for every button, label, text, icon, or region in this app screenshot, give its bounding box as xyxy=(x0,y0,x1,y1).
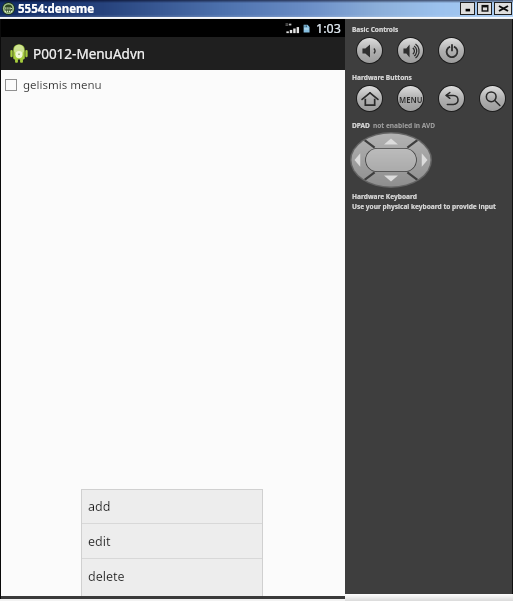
staticText: 1:03 xyxy=(316,20,341,37)
button[interactable]: add xyxy=(81,489,263,523)
staticText: DPAD xyxy=(352,119,370,129)
staticText: edit xyxy=(88,533,111,550)
staticText: Hardware Keyboard xyxy=(352,190,418,200)
button[interactable]: Volume up xyxy=(397,37,424,64)
button[interactable]: D-pad xyxy=(350,132,432,188)
button[interactable]: gelismis menu xyxy=(0,70,345,99)
staticText: MENU xyxy=(399,93,423,105)
staticText: add xyxy=(88,498,111,515)
button[interactable]: Volume down xyxy=(356,37,383,64)
staticText: not enabled in AVD xyxy=(373,119,435,129)
button[interactable]: Search xyxy=(479,85,506,112)
button[interactable]: Close xyxy=(494,2,512,15)
button[interactable]: delete xyxy=(81,559,263,593)
staticText: Hardware Buttons xyxy=(352,71,412,81)
button[interactable]: Home xyxy=(356,85,383,112)
staticText: P0012-MenuAdvn xyxy=(33,45,146,63)
button[interactable]: Power xyxy=(438,37,465,64)
staticText: 5554:deneme xyxy=(18,1,95,17)
staticText: gelismis menu xyxy=(23,77,102,93)
staticText: Basic Controls xyxy=(352,23,399,33)
button[interactable]: Menu xyxy=(397,85,424,112)
staticText: Use your physical keyboard to provide in… xyxy=(352,200,496,210)
button[interactable]: edit xyxy=(81,524,263,558)
button[interactable]: Minimize xyxy=(460,2,475,15)
staticText: delete xyxy=(88,568,125,585)
button[interactable]: Back xyxy=(438,85,465,112)
button[interactable]: Maximize xyxy=(477,2,492,15)
